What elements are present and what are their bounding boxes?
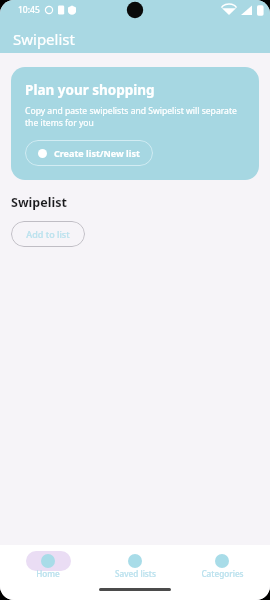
staticText: Saved lists: [115, 568, 156, 579]
staticText: Categories: [201, 568, 244, 579]
button[interactable]: Saved lists: [96, 548, 174, 582]
other: Saved lists: [128, 554, 142, 568]
other: Categories: [215, 554, 229, 568]
staticText: Swipelist: [13, 29, 75, 49]
button[interactable]: Home: [9, 548, 87, 582]
staticText: Swipelist: [11, 194, 67, 211]
staticText: Plan your shopping: [25, 81, 155, 99]
button[interactable]: Add to list: [11, 221, 85, 247]
staticText: 10:45: [18, 4, 40, 16]
staticText: Home: [36, 568, 60, 579]
staticText: Create list/New list: [54, 147, 140, 159]
button[interactable]: Create list/New list: [25, 140, 153, 166]
staticText: Copy and paste swipelists and Swipelist …: [25, 105, 245, 129]
button[interactable]: Categories: [183, 548, 261, 582]
staticText: Add to list: [26, 228, 70, 240]
other: Home: [41, 554, 55, 568]
